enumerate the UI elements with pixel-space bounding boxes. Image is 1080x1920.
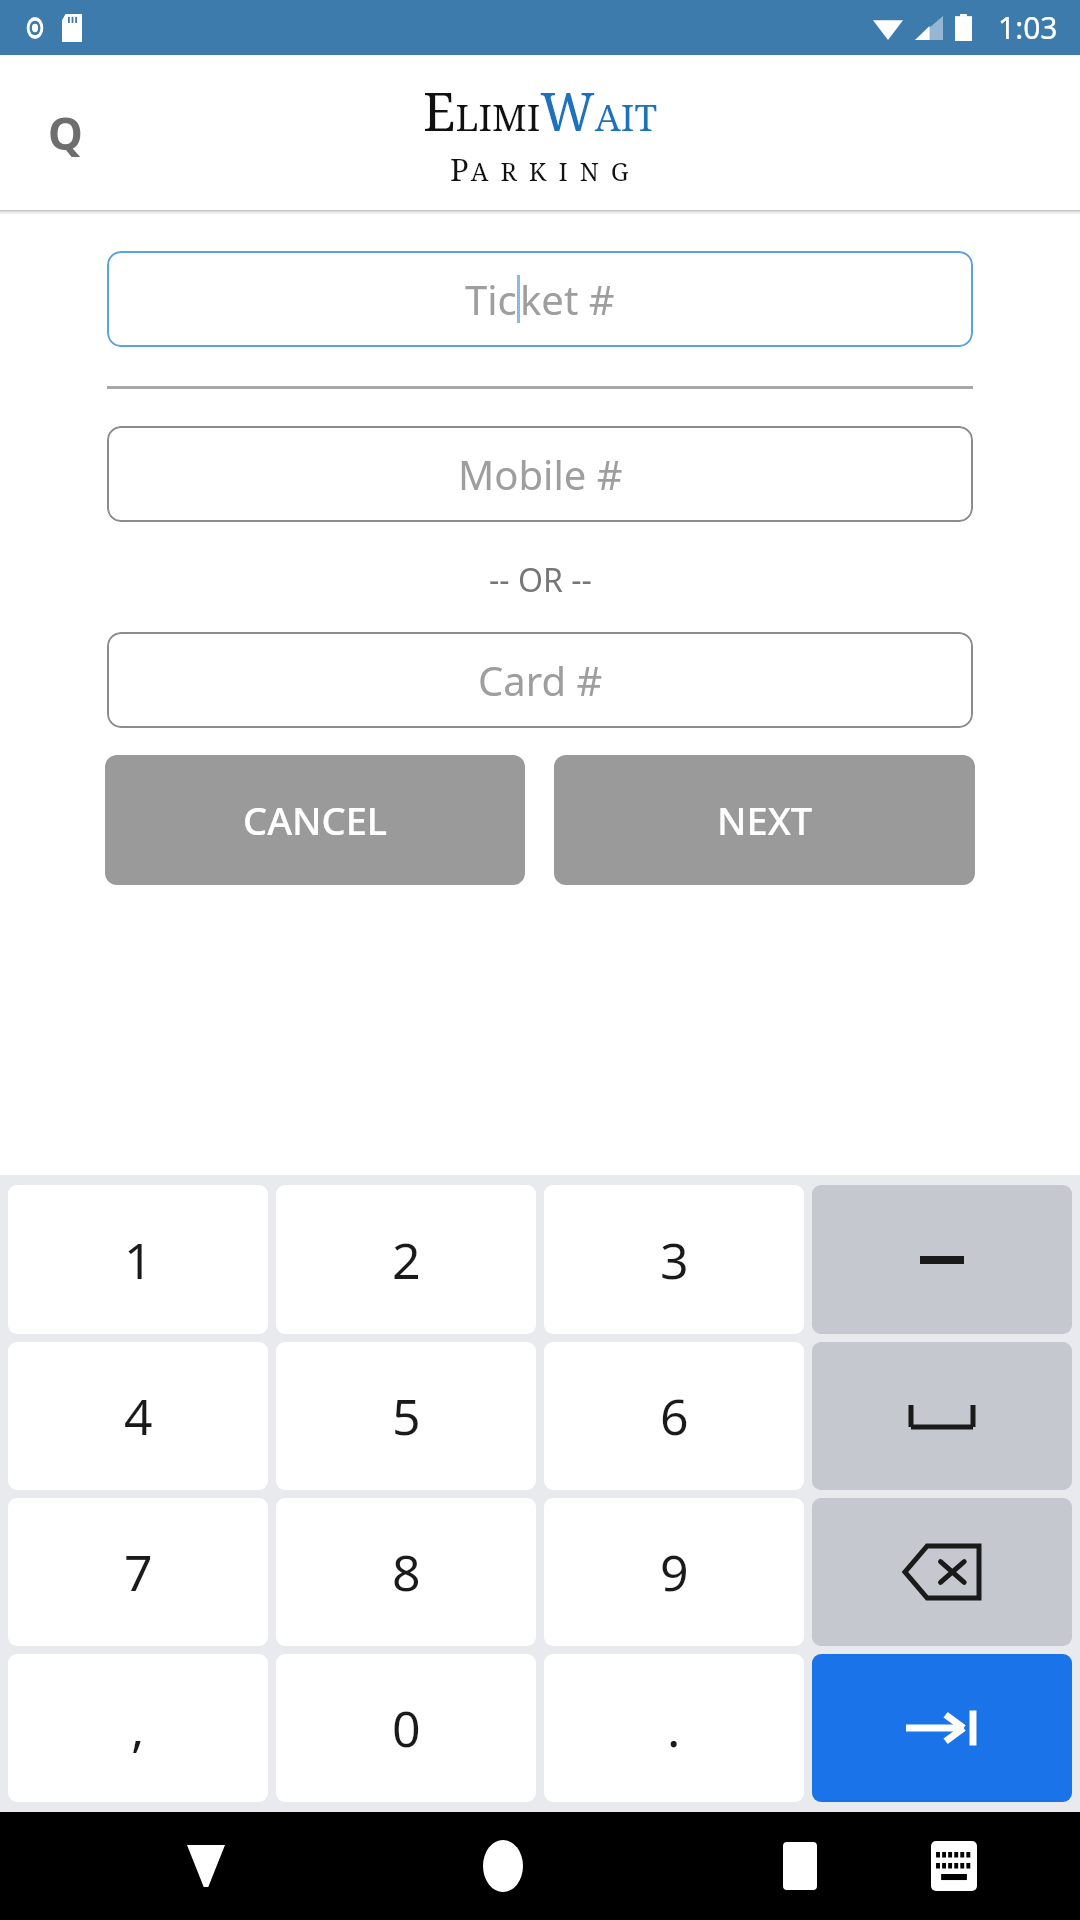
staticText: Q (48, 103, 83, 163)
button[interactable]: Card # (107, 632, 973, 728)
button[interactable]: 8 (276, 1498, 536, 1646)
button[interactable]: NEXT (554, 755, 975, 885)
button[interactable]: Home (457, 1820, 549, 1912)
staticText: ELIMIWAIT (423, 75, 658, 146)
button[interactable]: Next (812, 1654, 1072, 1802)
staticText: 2 (392, 1226, 421, 1294)
button[interactable]: 0 (276, 1654, 536, 1802)
button[interactable]: 4 (8, 1342, 268, 1490)
button[interactable]: Backspace (812, 1498, 1072, 1646)
staticText: 0 (392, 1694, 421, 1762)
staticText: 8 (392, 1538, 421, 1606)
staticText: . (667, 1694, 681, 1762)
staticText: 1 (124, 1226, 153, 1294)
button[interactable]: Tic (107, 251, 973, 347)
staticText: Tic (465, 272, 517, 326)
staticText: PA R K I N G (450, 148, 631, 190)
button[interactable]: 9 (544, 1498, 804, 1646)
button[interactable]: CANCEL (105, 755, 525, 885)
button[interactable]: 2 (276, 1185, 536, 1334)
staticText: ket # (520, 272, 615, 326)
button[interactable]: 7 (8, 1498, 268, 1646)
button[interactable]: . (544, 1654, 804, 1802)
staticText: -- OR -- (489, 558, 592, 602)
staticText: Card # (478, 653, 603, 707)
staticText: 3 (660, 1226, 689, 1294)
staticText: 4 (124, 1382, 153, 1450)
button[interactable]: 6 (544, 1342, 804, 1490)
staticText: , (131, 1694, 145, 1762)
button[interactable]: Menu (30, 98, 100, 168)
button[interactable]: , (8, 1654, 268, 1802)
staticText: Mobile # (458, 447, 623, 501)
button[interactable]: 3 (544, 1185, 804, 1334)
button[interactable]: Dash (812, 1185, 1072, 1334)
staticText: 9 (660, 1538, 689, 1606)
staticText: 5 (392, 1382, 421, 1450)
button[interactable]: Switch keyboard (908, 1820, 1000, 1912)
button[interactable]: Back (160, 1820, 252, 1912)
button[interactable]: Space (812, 1342, 1072, 1490)
button[interactable]: Mobile # (107, 426, 973, 522)
staticText: 7 (124, 1538, 153, 1606)
staticText: CANCEL (243, 794, 388, 846)
button[interactable]: 1 (8, 1185, 268, 1334)
staticText: 6 (660, 1382, 689, 1450)
staticText: 1:03 (998, 7, 1058, 48)
button[interactable]: 5 (276, 1342, 536, 1490)
staticText: NEXT (717, 794, 813, 846)
button[interactable]: Recent apps (754, 1820, 846, 1912)
